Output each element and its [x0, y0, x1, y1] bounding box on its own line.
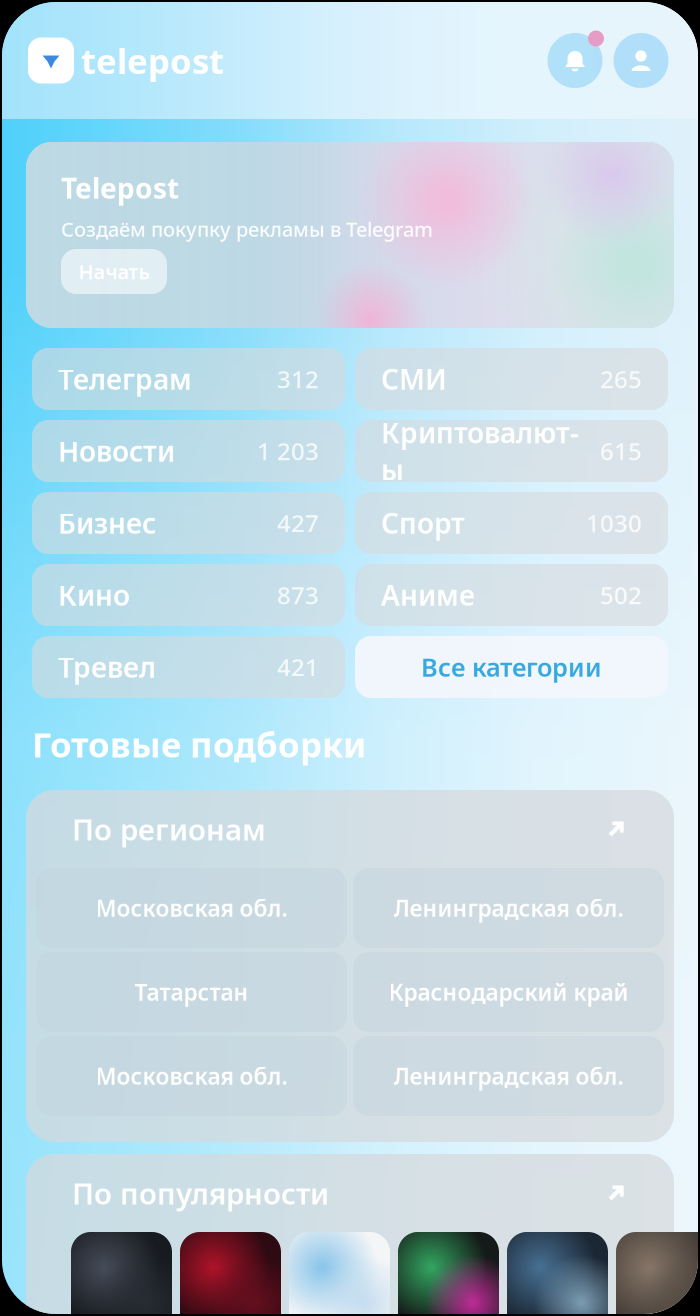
staticText: 421 [277, 651, 319, 683]
staticText: Бизнес [58, 504, 156, 542]
button[interactable]: Канал [398, 1232, 499, 1316]
staticText: Начать [78, 258, 149, 285]
button[interactable]: Канал [71, 1232, 172, 1316]
staticText: Кино [58, 576, 130, 614]
button[interactable]: Уведомления [544, 29, 606, 91]
staticText: 502 [600, 579, 642, 611]
button[interactable]: Краснодарский край [353, 952, 664, 1032]
button[interactable]: Канал [180, 1232, 281, 1316]
staticText: telepost [81, 37, 224, 83]
staticText: Ленинградская обл. [393, 1061, 623, 1091]
button[interactable]: Все категории [355, 636, 668, 698]
button[interactable]: Telepost [26, 142, 674, 328]
staticText: По популярности [72, 1173, 329, 1212]
button[interactable]: Ленинградская обл. [353, 1036, 664, 1116]
staticText: Создаём покупку рекламы в Telegram [61, 216, 433, 242]
staticText: 1030 [586, 507, 642, 539]
button[interactable]: Татарстан [36, 952, 347, 1032]
button[interactable]: По регионам [26, 790, 674, 868]
staticText: 873 [277, 579, 319, 611]
button[interactable]: Канал [616, 1232, 700, 1316]
staticText: 265 [600, 363, 642, 395]
staticText: Татарстан [134, 977, 248, 1007]
button[interactable]: СМИ [355, 348, 668, 410]
button[interactable]: Новости [32, 420, 345, 482]
staticText: Готовые подборки [32, 721, 366, 767]
button[interactable]: По популярности [26, 1154, 674, 1232]
button[interactable]: Криптовалюты [355, 420, 668, 482]
staticText: Тревел [58, 648, 156, 686]
button[interactable]: Спорт [355, 492, 668, 554]
staticText: Аниме [381, 576, 475, 614]
button[interactable]: telepost [28, 37, 224, 83]
staticText: Спорт [381, 504, 465, 542]
staticText: СМИ [381, 360, 447, 398]
button[interactable]: Ленинградская обл. [353, 868, 664, 948]
button[interactable]: Бизнес [32, 492, 345, 554]
staticText: По регионам [72, 809, 266, 848]
staticText: 427 [277, 507, 319, 539]
button[interactable]: Канал [289, 1232, 390, 1316]
staticText: Ленинградская обл. [393, 893, 623, 923]
staticText: Новости [58, 432, 175, 470]
staticText: 312 [277, 363, 319, 395]
button[interactable]: Телеграм [32, 348, 345, 410]
staticText: Telepost [61, 169, 179, 207]
button[interactable]: Канал [507, 1232, 608, 1316]
staticText: Телеграм [58, 360, 192, 398]
staticText: Криптовалюты [381, 414, 579, 488]
staticText: 1 203 [257, 435, 319, 467]
button[interactable]: Кино [32, 564, 345, 626]
button[interactable]: Тревел [32, 636, 345, 698]
staticText: Московская обл. [95, 893, 287, 923]
button[interactable]: Московская обл. [36, 1036, 347, 1116]
staticText: Краснодарский край [388, 977, 628, 1007]
button[interactable]: Аниме [355, 564, 668, 626]
button[interactable]: Московская обл. [36, 868, 347, 948]
staticText: 615 [600, 435, 642, 467]
staticText: Московская обл. [95, 1061, 287, 1091]
button[interactable]: Профиль [610, 29, 672, 91]
staticText: Все категории [421, 650, 602, 684]
